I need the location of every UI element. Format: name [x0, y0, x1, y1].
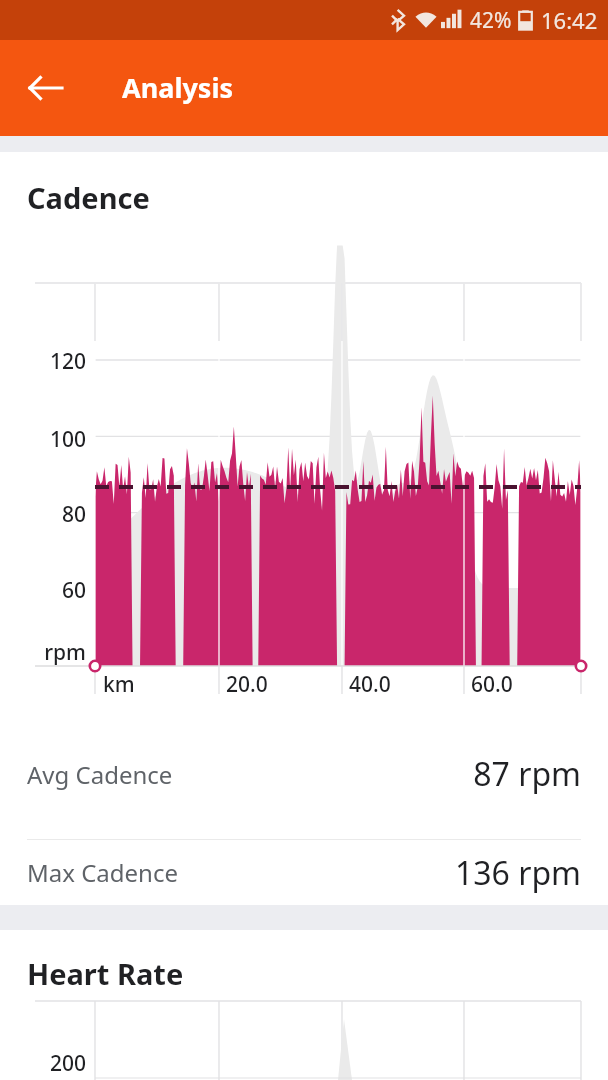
staticText: 20.0 — [226, 670, 268, 699]
staticText: 87 rpm — [473, 752, 581, 796]
staticText: Heart Rate — [27, 954, 184, 993]
staticText: 136 rpm — [454, 851, 581, 895]
staticText: 80 — [0, 500, 86, 529]
staticText: Analysis — [122, 69, 234, 106]
staticText: Cadence — [27, 178, 150, 217]
staticText: 100 — [0, 425, 86, 454]
staticText: Avg Cadence — [27, 758, 173, 791]
button[interactable]: Max Cadence — [0, 840, 608, 905]
staticText: rpm — [0, 638, 86, 667]
staticText: 60.0 — [471, 670, 513, 699]
staticText: 120 — [0, 347, 86, 376]
button[interactable]: Back — [18, 60, 74, 116]
staticText: 16:42 — [541, 5, 598, 35]
staticText: 40.0 — [349, 670, 391, 699]
staticText: 60 — [0, 576, 86, 605]
button[interactable]: Avg Cadence — [0, 709, 608, 839]
staticText: 42% — [470, 6, 512, 35]
staticText: km — [103, 670, 135, 699]
staticText: 200 — [0, 1049, 86, 1078]
staticText: Max Cadence — [27, 856, 178, 889]
